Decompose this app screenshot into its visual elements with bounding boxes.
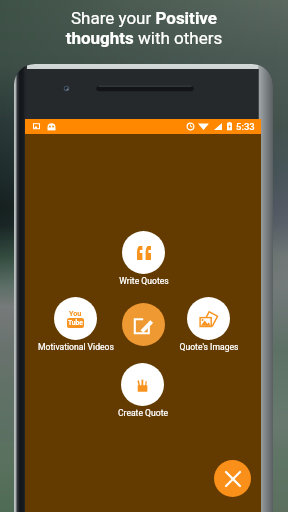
button[interactable]: Write Quotes: [122, 231, 165, 274]
staticText: Quote's Images: [91, 342, 288, 354]
staticText: You: [69, 309, 82, 317]
button[interactable]: Close menu: [214, 460, 251, 497]
button[interactable]: Edit: [122, 303, 165, 346]
button[interactable]: Create Quote: [121, 363, 164, 406]
staticText: Motivational Videos: [0, 342, 194, 354]
button[interactable]: Motivational Videos: [54, 297, 97, 340]
staticText: Share your Positive thoughts with others: [0, 8, 288, 512]
staticText: Tube: [68, 319, 83, 327]
button[interactable]: Quote's Images: [187, 297, 230, 340]
staticText: Create Quote: [25, 408, 261, 420]
staticText: Write Quotes: [26, 276, 262, 288]
staticText: 5:33: [236, 121, 255, 132]
